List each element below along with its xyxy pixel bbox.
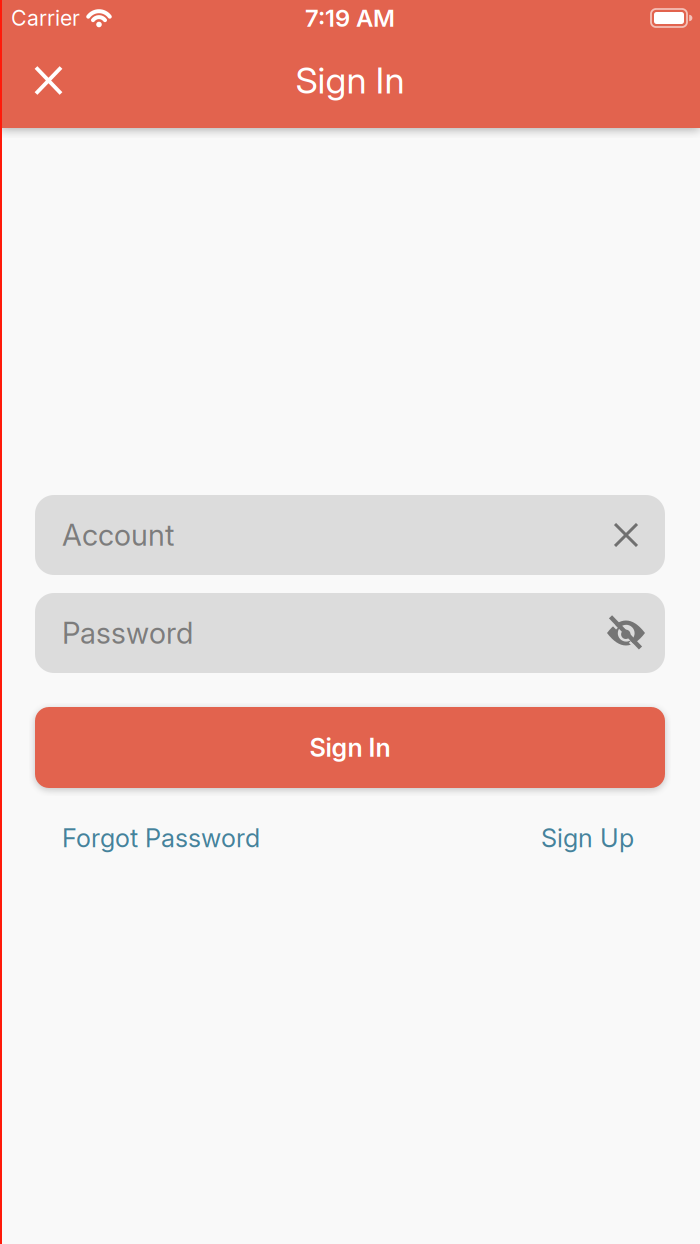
button[interactable]: Sign Up [541, 823, 634, 853]
button[interactable]: Show password [607, 615, 645, 650]
staticText: Account [62, 518, 174, 552]
staticText: Sign In [295, 59, 404, 102]
staticText: 7:19 AM [305, 4, 395, 32]
staticText: Sign Up [541, 823, 634, 853]
button[interactable]: Sign In [35, 707, 665, 788]
staticText: Forgot Password [62, 823, 260, 853]
button[interactable]: Clear account [615, 524, 637, 546]
button[interactable]: Close [22, 53, 75, 107]
staticText: Carrier [11, 5, 80, 31]
button[interactable]: Forgot Password [62, 823, 260, 853]
staticText: Password [62, 616, 193, 650]
staticText: Sign In [309, 733, 390, 762]
